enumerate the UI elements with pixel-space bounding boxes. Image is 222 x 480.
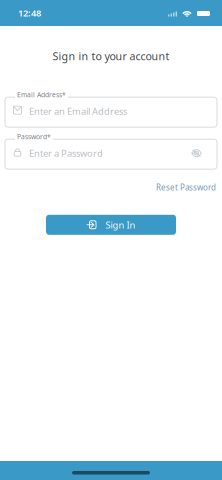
button[interactable]: Reset Password — [156, 182, 216, 193]
staticText: Enter a Password — [29, 147, 103, 159]
staticText: Enter an Email Address — [29, 105, 127, 117]
button[interactable]: Sign In — [46, 215, 176, 235]
staticText: Reset Password — [156, 182, 216, 193]
staticText: Sign In — [105, 219, 135, 231]
staticText: Password* — [17, 132, 51, 141]
button[interactable]: Show password — [191, 149, 202, 158]
staticText: Sign in to your account — [52, 49, 169, 63]
staticText: Email Address* — [17, 90, 66, 99]
staticText: 12:48 — [18, 7, 41, 19]
